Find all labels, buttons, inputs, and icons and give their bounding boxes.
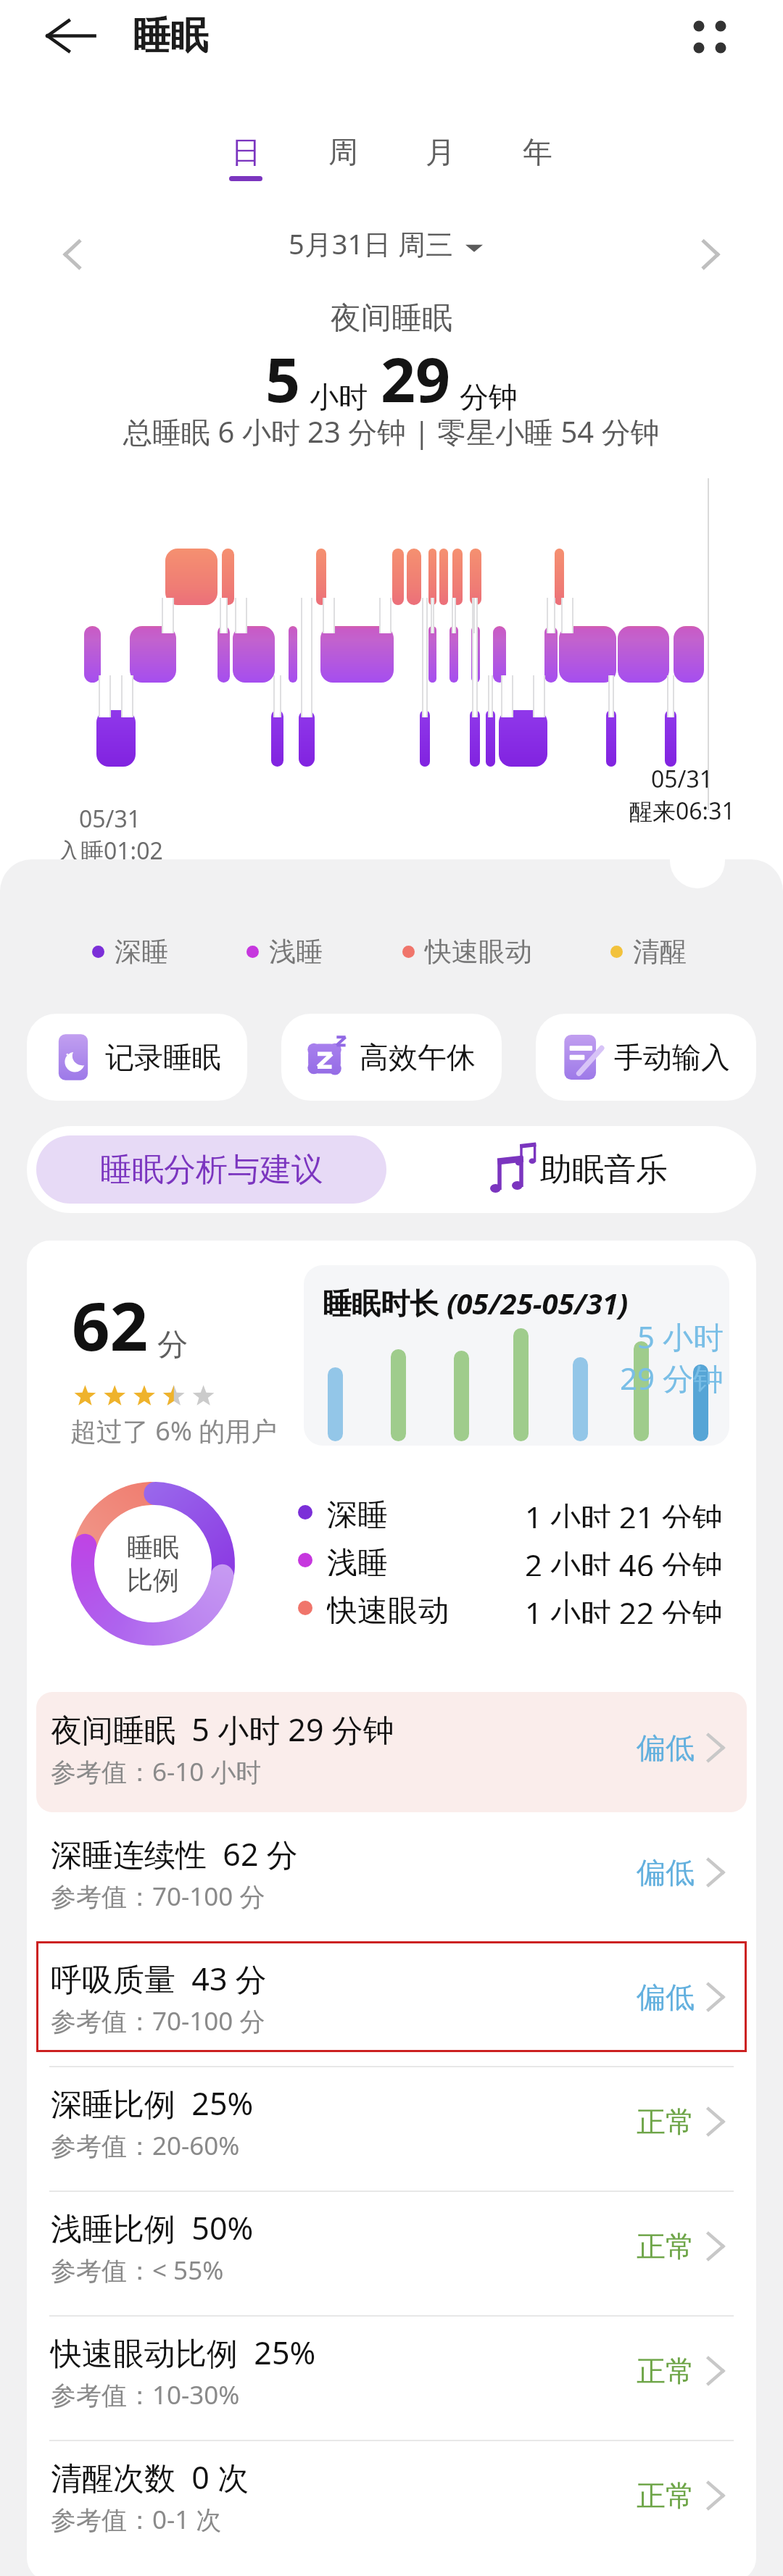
button[interactable]: 月 [391,134,489,203]
staticText: 参考值：6-10 小时 [51,1754,262,1789]
staticText: 深睡比例 25% [51,2082,254,2125]
staticText: 睡眠 [133,12,208,60]
button[interactable]: 手动输入 [536,1014,756,1101]
staticText: 05/31 [651,763,713,795]
staticText: 偏低 [637,1854,695,1891]
button[interactable]: 年 [489,134,586,203]
staticText: 醒来06:31 [629,795,735,827]
staticText: (05/25-05/31) [447,1283,629,1322]
staticText: 日 [231,134,261,172]
staticText: 睡眠 [127,1531,179,1564]
staticText: 手动输入 [614,1039,730,1075]
staticText: 浅睡比例 50% [51,2206,254,2249]
button[interactable]: 深睡连续性 62 分 [36,1817,747,1927]
staticText: 参考值：< 55% [51,2253,224,2288]
staticText: 分 [157,1326,188,1364]
staticText: 分钟 [460,379,518,415]
button[interactable]: 深睡比例 25% [36,2066,747,2177]
staticText: 参考值：0-1 次 [51,2502,222,2537]
button[interactable]: 清醒次数 0 次 [36,2440,747,2551]
staticText: 周 [328,134,358,172]
staticText: 比例 [127,1564,179,1596]
staticText: 1 小时 21 分钟 [525,1496,723,1528]
staticText: 5 小时 [637,1316,724,1357]
staticText: 29 分钟 [620,1357,724,1399]
staticText: 月 [426,134,455,172]
staticText: 正常 [637,2477,695,2514]
staticText: 5月31日 周三 [289,225,454,262]
staticText: 快速眼动 [425,935,532,969]
button[interactable]: 高效午休 [281,1014,502,1101]
staticText: 参考值：20-60% [51,2128,240,2163]
button[interactable]: 日 [197,134,294,203]
staticText: 超过了 6% 的用户 [70,1413,278,1449]
button[interactable]: 浅睡比例 50% [36,2191,747,2301]
button[interactable]: 睡眠分析与建议 [36,1135,386,1204]
staticText: 2 小时 46 分钟 [525,1544,723,1576]
staticText: 正常 [637,2228,695,2264]
button[interactable]: Previous day [52,232,96,275]
staticText: 29 [381,337,451,420]
button[interactable]: 呼吸质量 43 分 [36,1941,747,2052]
staticText: 参考值：70-100 分 [51,1879,265,1914]
staticText: 正常 [637,2353,695,2389]
button[interactable]: 记录睡眠 [27,1014,247,1101]
staticText: 快速眼动比例 25% [51,2331,316,2374]
staticText: 睡眠分析与建议 [100,1150,323,1190]
staticText: 偏低 [637,1979,695,2015]
staticText: 呼吸质量 43 分 [51,1957,267,2000]
button[interactable]: 助眠音乐 [397,1126,756,1213]
staticText: 总睡眠 6 小时 23 分钟 | 零星小睡 54 分钟 [123,412,660,451]
staticText: 快速眼动 [327,1592,525,1624]
button[interactable]: More options [687,14,732,59]
staticText: 偏低 [637,1730,695,1766]
staticText: 深睡连续性 62 分 [51,1833,298,1875]
staticText: 深睡 [327,1496,525,1528]
button[interactable]: 夜间睡眠 5 小时 29 分钟 [36,1692,747,1812]
button[interactable]: 周 [294,134,391,203]
staticText: 浅睡 [327,1544,525,1576]
staticText: 入睡01:02 [57,835,163,867]
staticText: 清醒 [633,935,687,969]
button[interactable]: 5月31日 周三 [289,225,483,262]
staticText: 睡眠时长 [323,1283,447,1322]
staticText: 5 [265,337,301,420]
staticText: 助眠音乐 [540,1150,668,1190]
staticText: 高效午休 [360,1039,476,1075]
button[interactable]: Next day [687,232,731,275]
button[interactable]: Back [45,13,96,64]
staticText: 62 [72,1280,149,1370]
staticText: 小时 [310,379,368,415]
staticText: 1 小时 22 分钟 [525,1592,723,1624]
staticText: 05/31 [79,803,141,835]
staticText: 浅睡 [269,935,323,969]
staticText: 参考值：10-30% [51,2377,240,2412]
staticText: 夜间睡眠 5 小时 29 分钟 [51,1708,394,1751]
staticText: 清醒次数 0 次 [51,2456,249,2498]
staticText: 记录睡眠 [105,1039,221,1075]
staticText: 参考值：70-100 分 [51,2004,265,2038]
staticText: 深睡 [115,935,168,969]
staticText: 夜间睡眠 [331,299,452,338]
staticText: 年 [523,134,552,172]
staticText: 正常 [637,2104,695,2140]
button[interactable]: 快速眼动比例 25% [36,2315,747,2426]
